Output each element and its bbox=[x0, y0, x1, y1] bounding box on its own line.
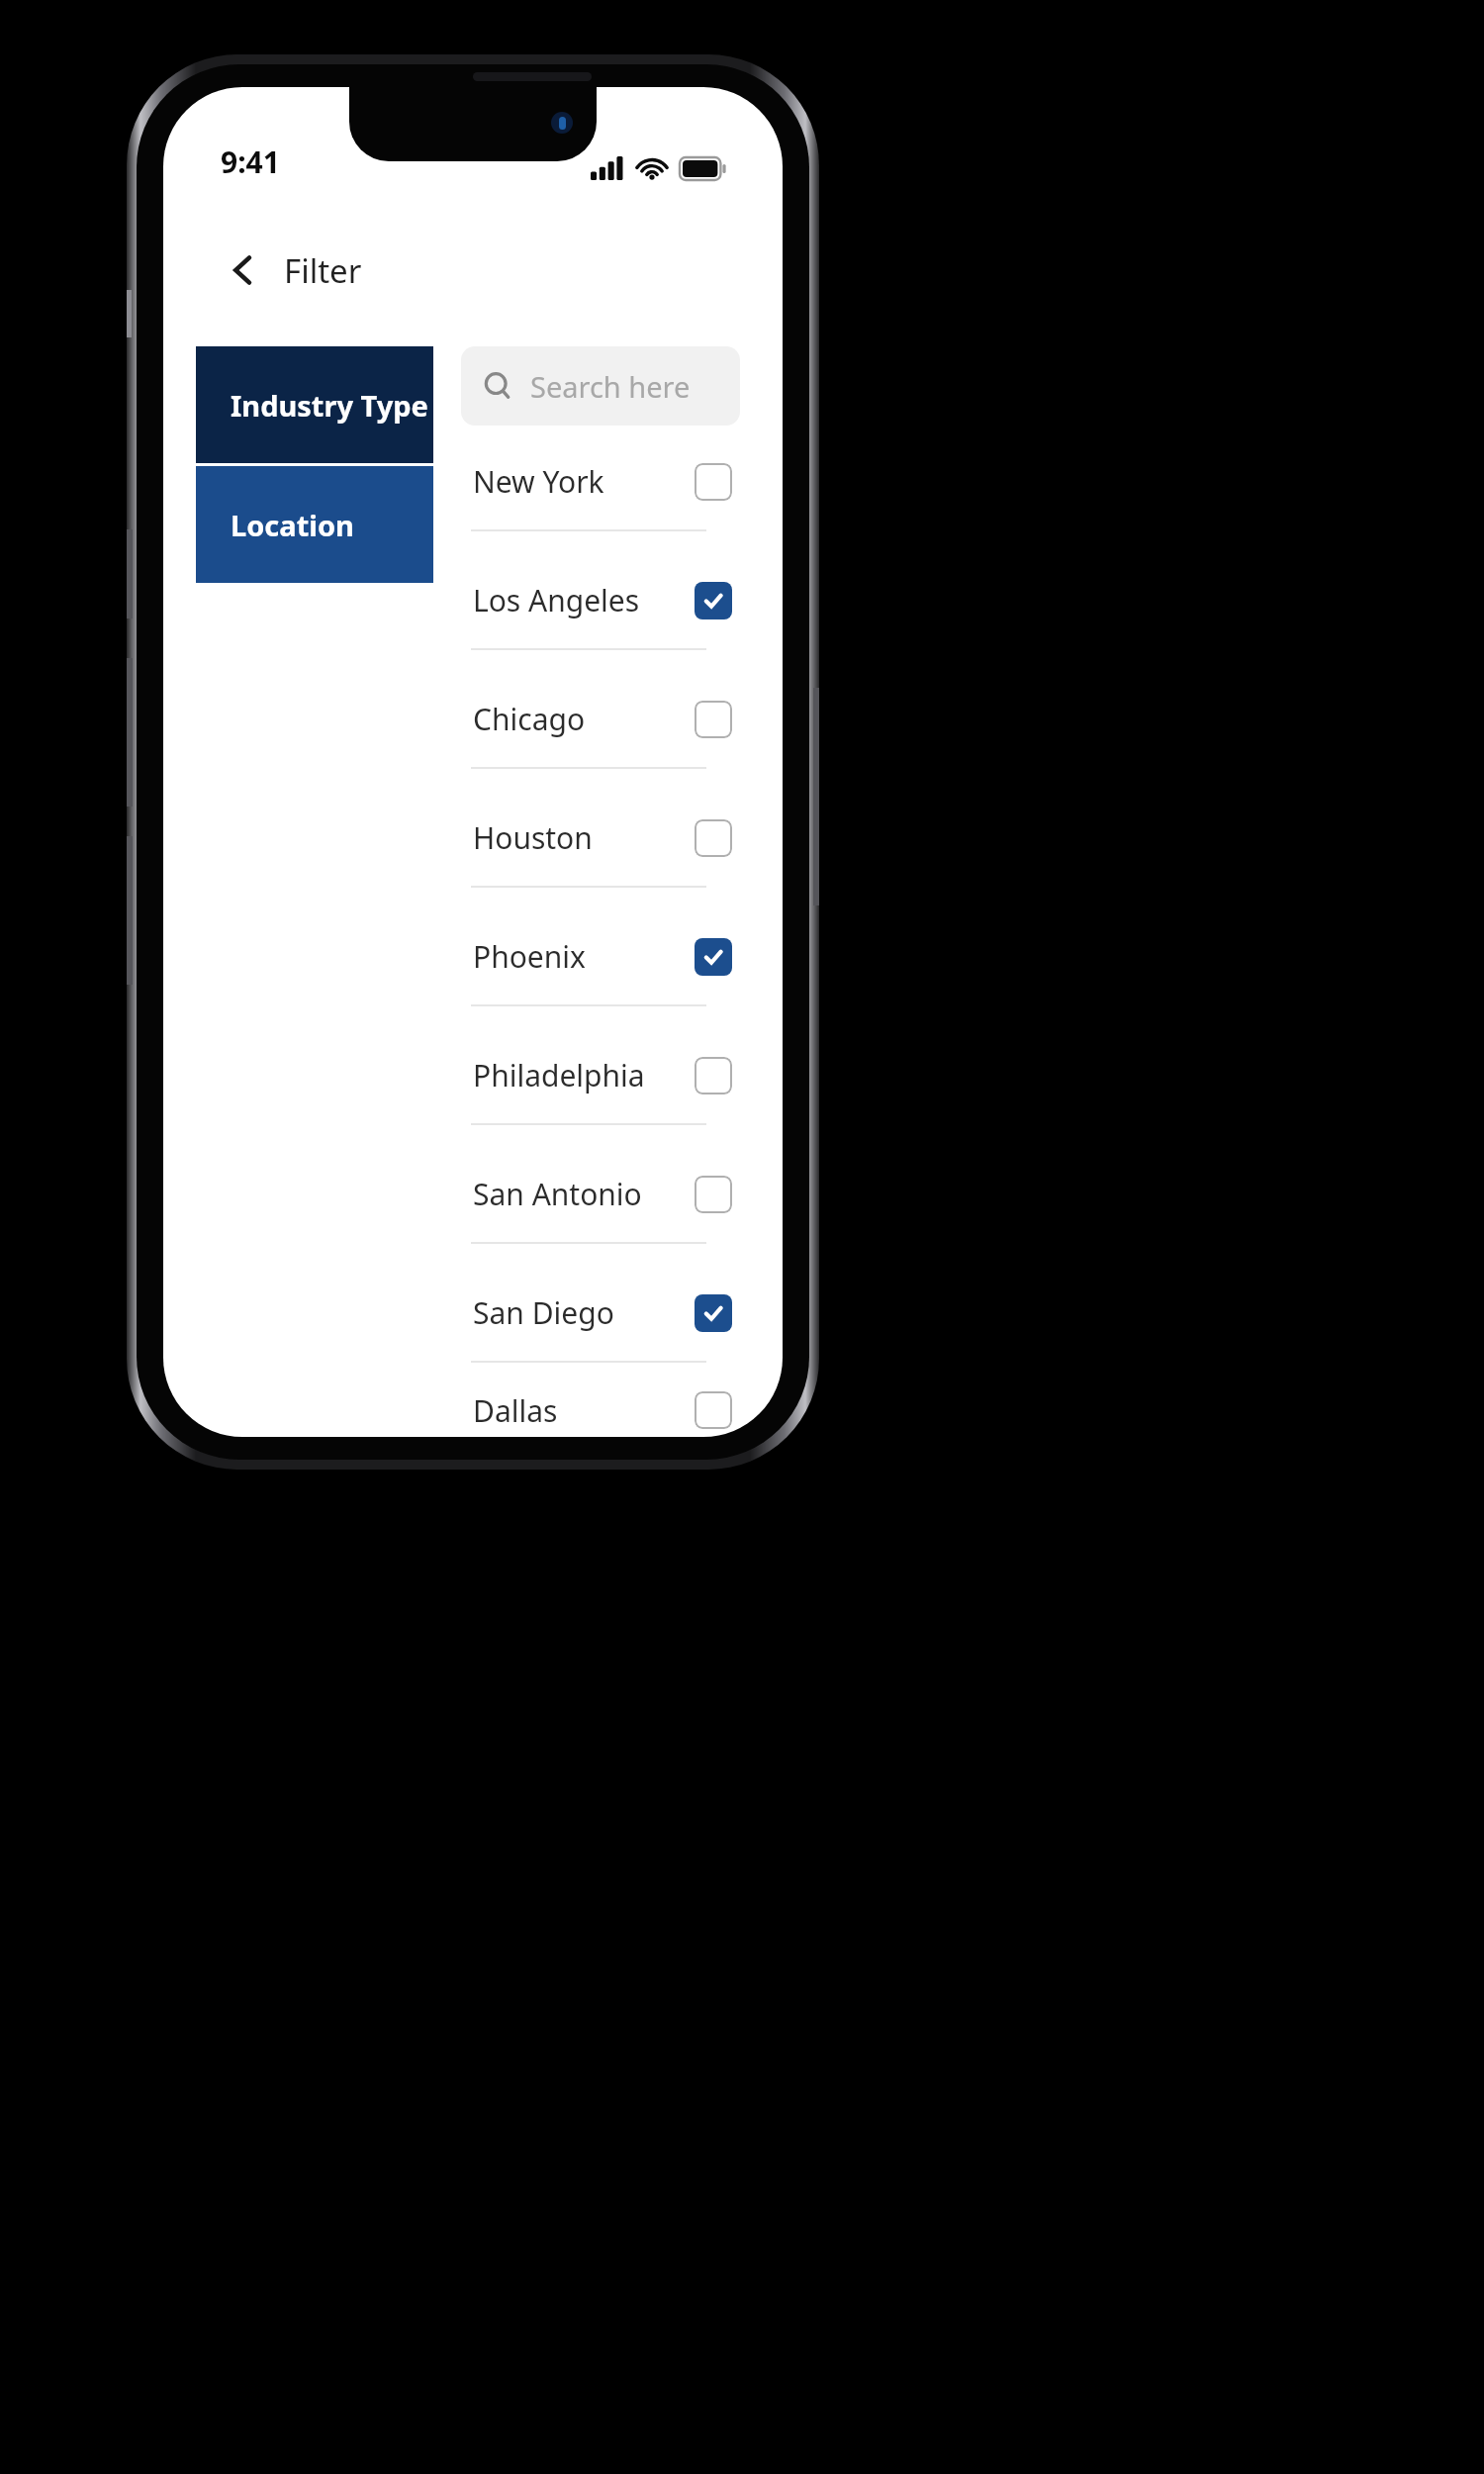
button[interactable]: Phoenix bbox=[461, 908, 740, 1004]
staticText: Location bbox=[231, 506, 354, 544]
staticText: Los Angeles bbox=[473, 580, 640, 620]
button[interactable]: Philadelphia bbox=[461, 1027, 740, 1123]
button[interactable]: San Diego bbox=[461, 1265, 740, 1361]
staticText: Search here bbox=[530, 367, 691, 406]
staticText: Phoenix bbox=[473, 936, 586, 977]
staticText: Dallas bbox=[473, 1390, 558, 1431]
staticText: San Diego bbox=[473, 1292, 614, 1333]
button[interactable]: San Antonio bbox=[461, 1146, 740, 1242]
button[interactable]: Chicago bbox=[461, 671, 740, 767]
staticText: Philadelphia bbox=[473, 1055, 645, 1095]
staticText: Chicago bbox=[473, 699, 586, 739]
button[interactable]: Industry Type bbox=[196, 346, 433, 463]
button[interactable]: Back bbox=[215, 241, 272, 299]
button[interactable]: New York bbox=[461, 433, 740, 529]
button[interactable]: Los Angeles bbox=[461, 552, 740, 648]
staticText: Filter bbox=[284, 248, 362, 293]
button[interactable]: Location bbox=[196, 466, 433, 583]
staticText: San Antonio bbox=[473, 1174, 642, 1214]
staticText: Industry Type bbox=[231, 386, 428, 425]
staticText: Houston bbox=[473, 817, 593, 858]
button[interactable]: Search here bbox=[461, 346, 740, 426]
button[interactable]: Dallas bbox=[461, 1383, 740, 1437]
staticText: New York bbox=[473, 461, 604, 502]
staticText: 9:41 bbox=[221, 142, 280, 182]
button[interactable]: Houston bbox=[461, 790, 740, 886]
